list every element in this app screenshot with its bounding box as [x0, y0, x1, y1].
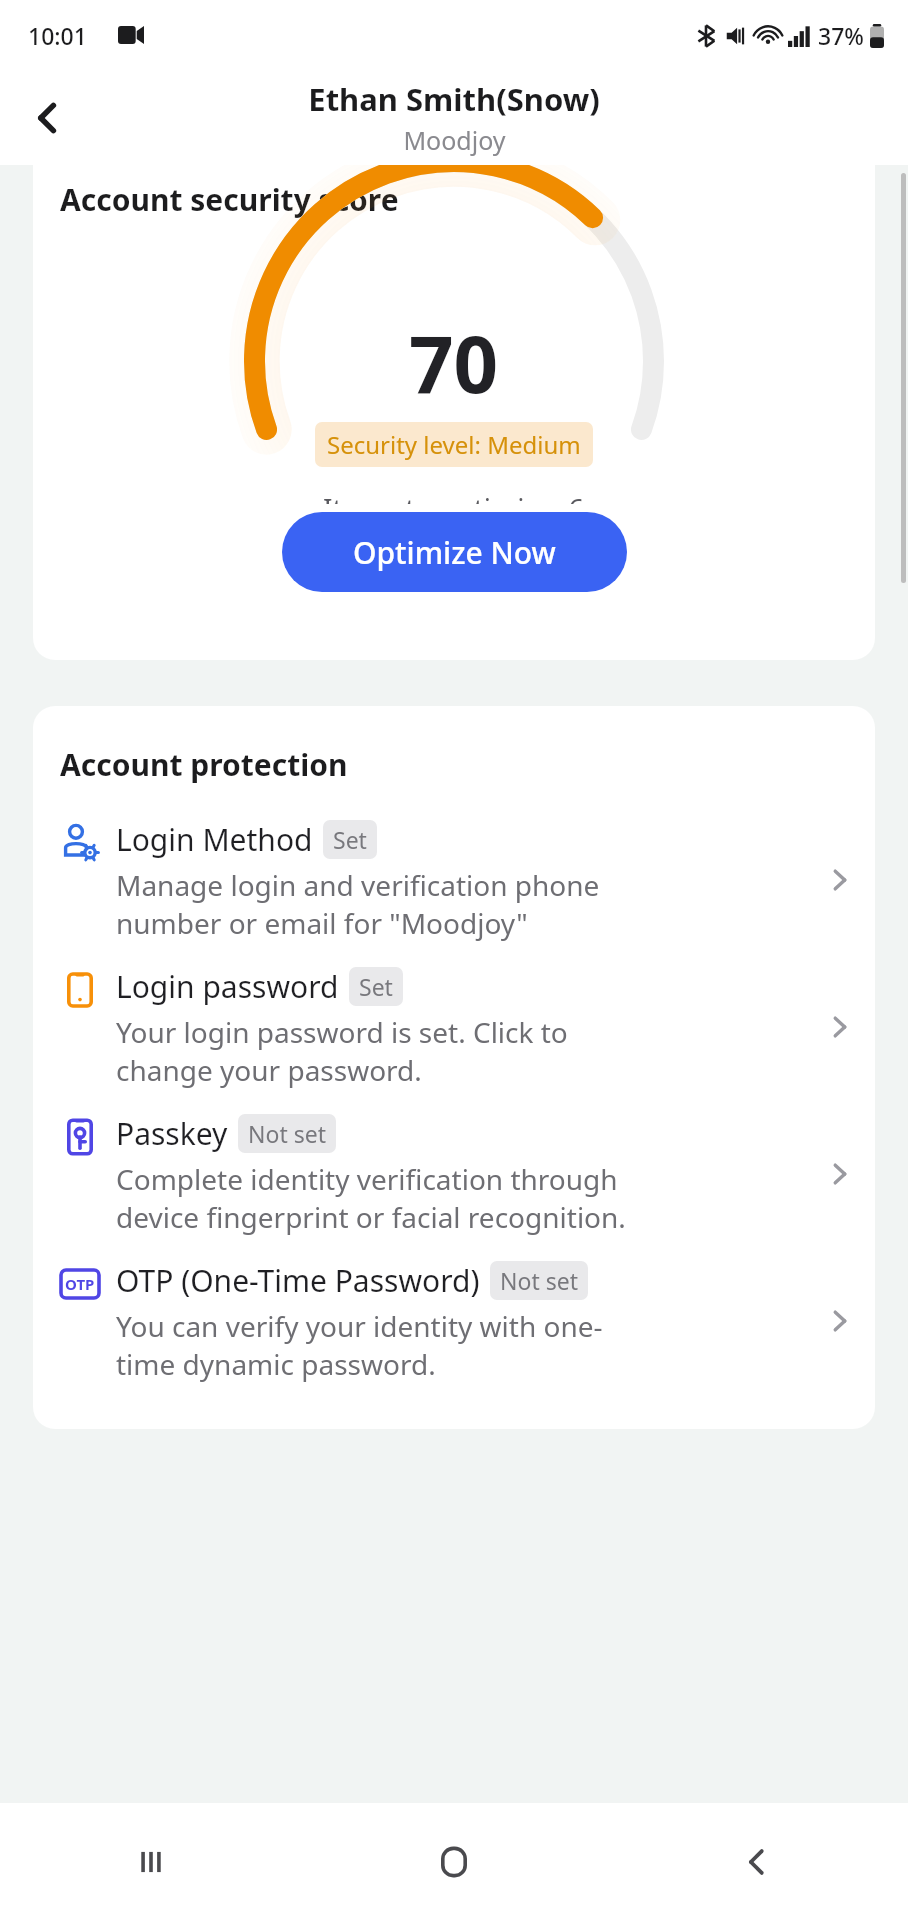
button[interactable]: Optimize Now: [282, 512, 627, 592]
staticText: Items to optimize: 6: [323, 489, 585, 504]
staticText: Security level: Medium: [327, 428, 581, 461]
button[interactable]: Login password: [33, 958, 875, 1105]
staticText: number or email for "Moodjoy": [116, 904, 528, 942]
staticText: Moodjoy: [403, 123, 506, 157]
staticText: Account protection: [60, 744, 348, 785]
staticText: Not set: [500, 1265, 578, 1296]
staticText: OTP: [65, 1274, 95, 1294]
staticText: time dynamic password.: [116, 1345, 436, 1383]
button[interactable]: Passkey: [33, 1105, 875, 1252]
staticText: Login password: [116, 966, 339, 1007]
staticText: Account security score: [60, 179, 399, 220]
staticText: change your password.: [116, 1051, 422, 1089]
staticText: Set: [333, 824, 367, 855]
staticText: Complete identity verification through: [116, 1160, 618, 1198]
button[interactable]: Back: [605, 1803, 908, 1920]
button[interactable]: Recent apps: [0, 1803, 302, 1920]
staticText: Ethan Smith(Snow): [308, 78, 600, 120]
staticText: Login Method: [116, 819, 313, 860]
staticText: 37%: [818, 20, 864, 51]
button[interactable]: Back: [10, 80, 86, 156]
button[interactable]: OTP: [33, 1252, 875, 1399]
staticText: 70: [409, 310, 499, 416]
staticText: OTP (One-Time Password): [116, 1260, 480, 1301]
staticText: Your login password is set. Click to: [116, 1013, 568, 1051]
staticText: Not set: [248, 1118, 326, 1149]
staticText: 10:01: [28, 20, 87, 51]
button[interactable]: Home: [302, 1803, 605, 1920]
staticText: Optimize Now: [353, 532, 556, 573]
staticText: Passkey: [116, 1113, 228, 1154]
staticText: You can verify your identity with one-: [116, 1307, 603, 1345]
staticText: device fingerprint or facial recognition…: [116, 1198, 626, 1236]
staticText: Set: [359, 971, 393, 1002]
staticText: Manage login and verification phone: [116, 866, 600, 904]
button[interactable]: Login Method: [33, 811, 875, 958]
